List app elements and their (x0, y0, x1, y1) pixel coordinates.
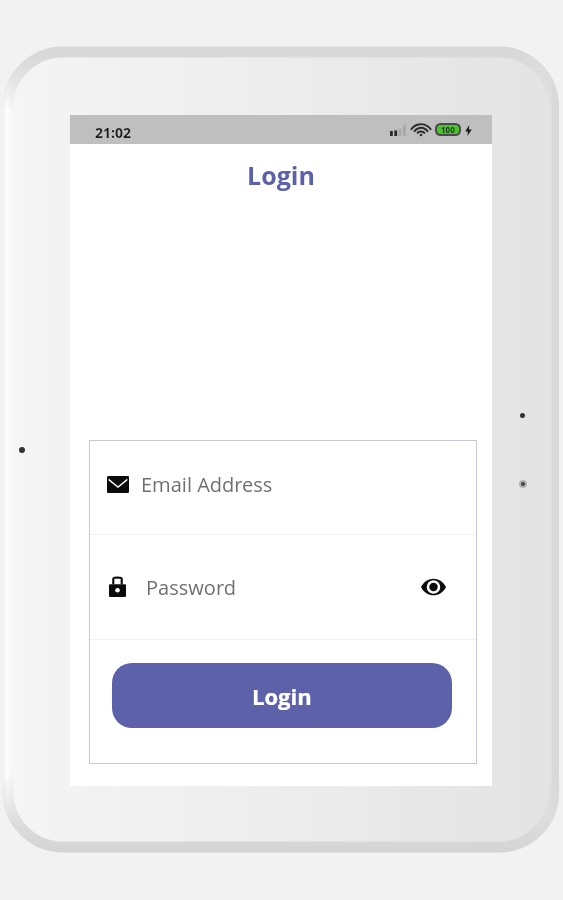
button[interactable]: Email Address (89, 440, 477, 534)
staticText: 21:02 (95, 123, 131, 142)
staticText: Email Address (141, 471, 273, 498)
staticText: Login (252, 681, 312, 711)
button[interactable]: Password (89, 535, 477, 639)
staticText: 100 (441, 124, 455, 135)
button[interactable]: Show password (418, 572, 448, 602)
button[interactable]: Login (112, 663, 452, 728)
staticText: Password (146, 574, 236, 601)
staticText: Login (70, 158, 492, 192)
